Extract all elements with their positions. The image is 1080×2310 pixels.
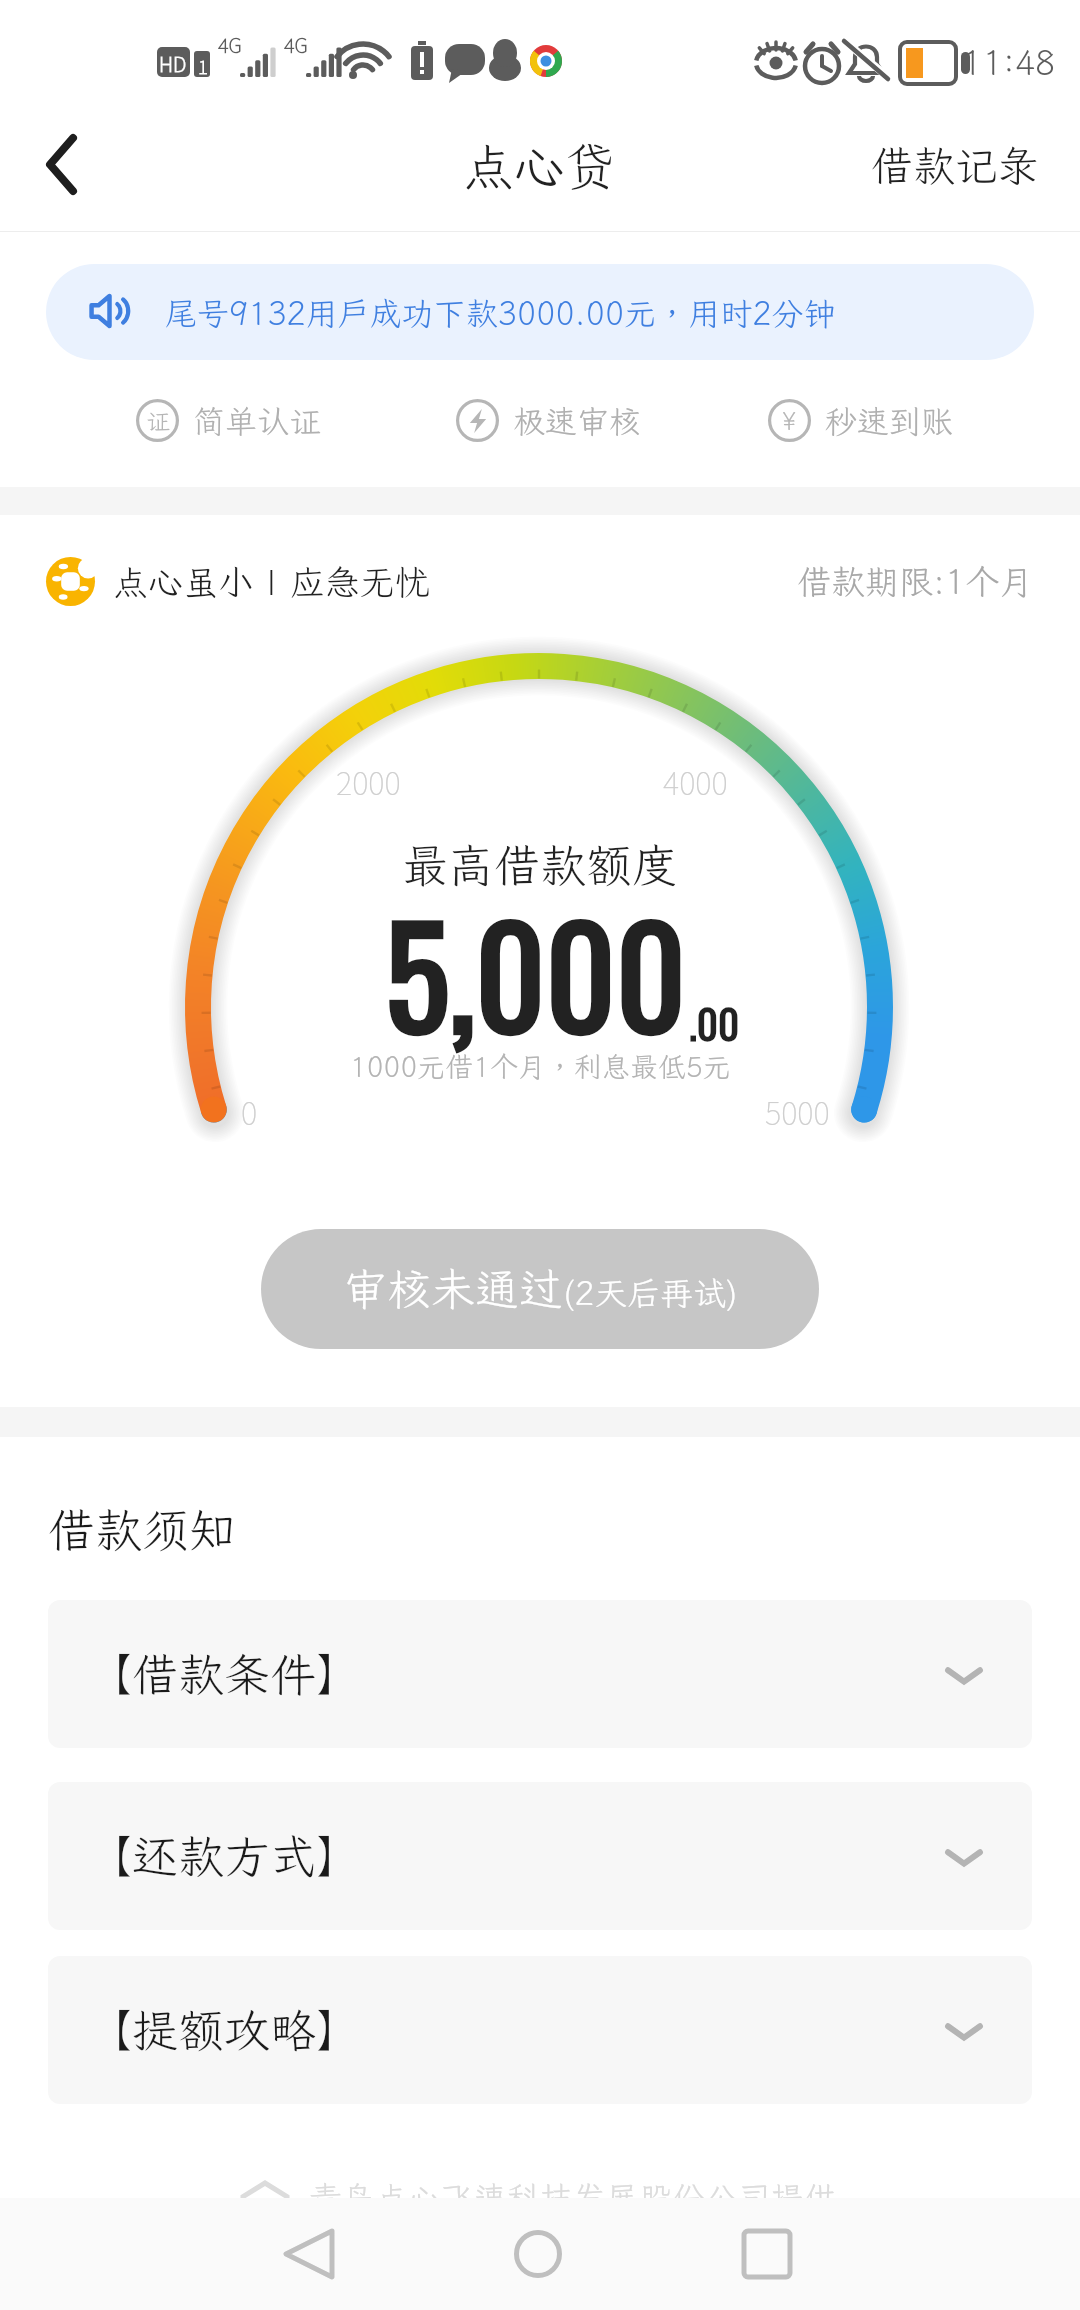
- staticText: 点心贷: [463, 132, 617, 199]
- staticText: 1000元借1个月，利息最低5元: [350, 1048, 731, 1085]
- staticText: 1: [198, 52, 208, 80]
- staticText: 借款期限:1个月: [797, 559, 1034, 604]
- staticText: 借款须知: [48, 1498, 236, 1560]
- staticText: 5,000: [385, 871, 687, 1073]
- staticText: 秒速到账: [825, 400, 954, 442]
- button[interactable]: 尾号9132用户成功下款3000.00元，用时2分钟: [46, 264, 1034, 360]
- button[interactable]: 【提额攻略】: [48, 1956, 1032, 2104]
- staticText: 【提额攻略】: [86, 2000, 362, 2061]
- staticText: 【借款条件】: [86, 1644, 362, 1705]
- staticText: 借款记录: [871, 138, 1040, 193]
- button[interactable]: Back: [249, 2198, 369, 2310]
- staticText: 2000: [336, 759, 401, 804]
- staticText: 4000: [663, 759, 728, 804]
- staticText: 证: [146, 405, 170, 437]
- button[interactable]: Recents: [707, 2198, 827, 2310]
- staticText: 最高借款额度: [402, 835, 678, 896]
- button[interactable]: 借款记录: [831, 110, 1080, 221]
- staticText: .00: [689, 992, 740, 1053]
- staticText: 【还款方式】: [86, 1826, 362, 1887]
- staticText: 4G: [218, 30, 242, 59]
- button[interactable]: 【还款方式】: [48, 1782, 1032, 1930]
- staticText: (2天后再试): [563, 1271, 738, 1314]
- staticText: 极速审核: [513, 400, 642, 442]
- staticText: 审核未通过: [343, 1260, 563, 1318]
- button[interactable]: 极速审核: [456, 399, 642, 442]
- staticText: ¥: [782, 405, 797, 437]
- button[interactable]: 证: [136, 399, 322, 442]
- staticText: 11:48: [962, 40, 1056, 85]
- button[interactable]: Home: [478, 2198, 598, 2310]
- staticText: 尾号9132用户成功下款3000.00元，用时2分钟: [165, 292, 836, 334]
- button[interactable]: 【借款条件】: [48, 1600, 1032, 1748]
- staticText: 简单认证: [193, 400, 322, 442]
- staticText: 青岛点心飞速科技发展股份公司提供: [309, 2176, 837, 2219]
- button[interactable]: Back: [0, 100, 120, 231]
- button[interactable]: ¥: [768, 399, 954, 442]
- staticText: 5000: [765, 1089, 830, 1134]
- staticText: 点心虽小 | 应急无忧: [113, 559, 430, 605]
- button[interactable]: 审核未通过: [261, 1229, 819, 1349]
- staticText: 4G: [284, 30, 308, 59]
- staticText: HD: [159, 49, 187, 78]
- staticText: 0: [241, 1089, 258, 1134]
